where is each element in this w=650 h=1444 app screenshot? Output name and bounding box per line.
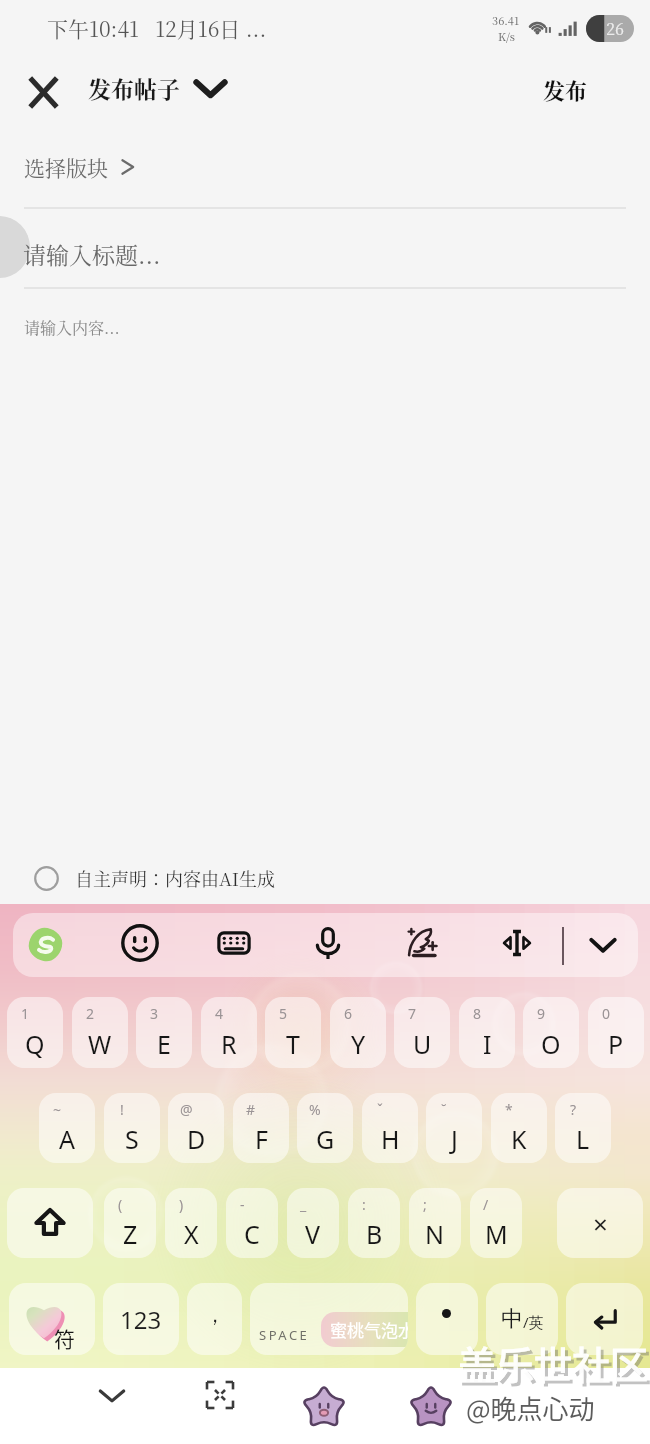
button[interactable]: ; [409,1188,461,1258]
button[interactable]: 3 [136,997,192,1068]
button[interactable]: Handwriting [400,921,444,965]
button[interactable]: 0 [588,997,644,1068]
staticText: ， [205,1303,225,1328]
button[interactable]: Recent app 1 [298,1382,350,1434]
staticText: 自主声明：内容由AI生成 [75,865,276,891]
button[interactable]: Symbols [9,1283,95,1355]
staticText: × [593,1206,608,1241]
button[interactable]: Space [250,1283,408,1355]
button[interactable]: ? [555,1093,611,1163]
staticText: X [184,1217,199,1251]
button[interactable]: ! [104,1093,160,1163]
staticText: Y [351,1027,366,1061]
staticText: 6 [344,1004,353,1023]
staticText: ( [118,1195,123,1214]
button[interactable]: % [297,1093,353,1163]
staticText: L [576,1122,590,1156]
button[interactable]: Backspace [557,1188,643,1258]
staticText: O [541,1027,561,1061]
button[interactable]: 选择版块 [14,140,145,194]
staticText: S [125,1122,139,1156]
button[interactable]: 6 [330,997,386,1068]
button[interactable]: Keyboard [212,921,256,965]
staticText: 盖乐世社区 [461,1338,650,1393]
button[interactable]: Enter [566,1283,643,1355]
staticText: 1 [21,1004,30,1023]
staticText: 36.41 [492,12,520,28]
button[interactable]: 2 [72,997,128,1068]
button[interactable]: ) [165,1188,217,1258]
staticText: F [255,1122,268,1156]
staticText: E [157,1027,171,1061]
staticText: 发布 [543,74,588,106]
button[interactable]: / [470,1188,522,1258]
button[interactable]: 5 [265,997,321,1068]
staticText: 下午10:41 12月16日 ... [47,13,267,43]
button[interactable]: 发布帖子 [82,64,233,113]
button[interactable]: Collapse keyboard [87,1370,137,1420]
staticText: 9 [537,1004,546,1023]
button[interactable]: 1 [7,997,63,1068]
button[interactable]: ˇ [362,1093,418,1163]
button[interactable]: ˘ [426,1093,482,1163]
staticText: B [366,1217,383,1251]
staticText: ) [179,1195,184,1214]
staticText: # [246,1100,256,1119]
staticText: / [483,1195,489,1214]
button[interactable]: @ [168,1093,224,1163]
staticText: 123 [120,1303,162,1336]
button[interactable]: : [348,1188,400,1258]
button[interactable]: Recent app 2 [405,1382,457,1434]
staticText: Z [123,1217,138,1251]
button[interactable]: 9 [523,997,579,1068]
staticText: W [88,1027,112,1061]
button[interactable]: Voice input [306,921,350,965]
staticText: @ [180,1100,193,1119]
staticText: 26 [606,17,624,40]
button[interactable]: Hide keyboard [583,925,623,965]
button[interactable]: Switch language [486,1283,558,1355]
button[interactable]: - [226,1188,278,1258]
staticText: ; [423,1195,427,1214]
button[interactable]: 发布 [531,64,600,116]
staticText: ? [570,1100,577,1119]
staticText: _ [300,1195,307,1214]
staticText: 7 [408,1004,417,1023]
staticText: @晚点心动 [466,1389,595,1427]
staticText: R [221,1027,237,1061]
button[interactable]: ~ [39,1093,95,1163]
button[interactable]: _ [287,1188,339,1258]
staticText: 5 [279,1004,288,1023]
staticText: /英 [523,1312,544,1332]
button[interactable]: # [233,1093,289,1163]
button[interactable]: Screenshot [195,1370,245,1420]
button[interactable]: * [491,1093,547,1163]
button[interactable]: Emoji [118,921,162,965]
button[interactable]: Sogou input [27,926,64,963]
staticText: T [286,1027,300,1061]
staticText: : [362,1195,366,1214]
staticText: * [505,1100,513,1119]
button[interactable]: Move cursor [495,921,539,965]
button[interactable]: Period [416,1283,478,1355]
staticText: 4 [215,1004,224,1023]
staticText: 发布帖子 [88,72,180,105]
button[interactable]: Close [17,66,69,118]
button[interactable]: 8 [459,997,515,1068]
staticText: 请输入标题... [23,238,161,271]
staticText: J [451,1122,458,1156]
button[interactable]: 123 [103,1283,179,1355]
staticText: - [240,1195,245,1214]
staticText: G [316,1122,335,1156]
button[interactable]: 7 [394,997,450,1068]
button[interactable]: ， [187,1283,242,1355]
staticText: 符 [54,1323,75,1353]
button[interactable]: ( [104,1188,156,1258]
staticText: 请输入内容... [24,316,120,339]
button[interactable]: Shift [7,1188,93,1258]
staticText: 中 [501,1305,523,1333]
staticText: 8 [473,1004,482,1023]
staticText: K/s [498,28,515,44]
button[interactable]: 4 [201,997,257,1068]
button[interactable]: 自主声明：内容由AI生成 [0,852,650,904]
